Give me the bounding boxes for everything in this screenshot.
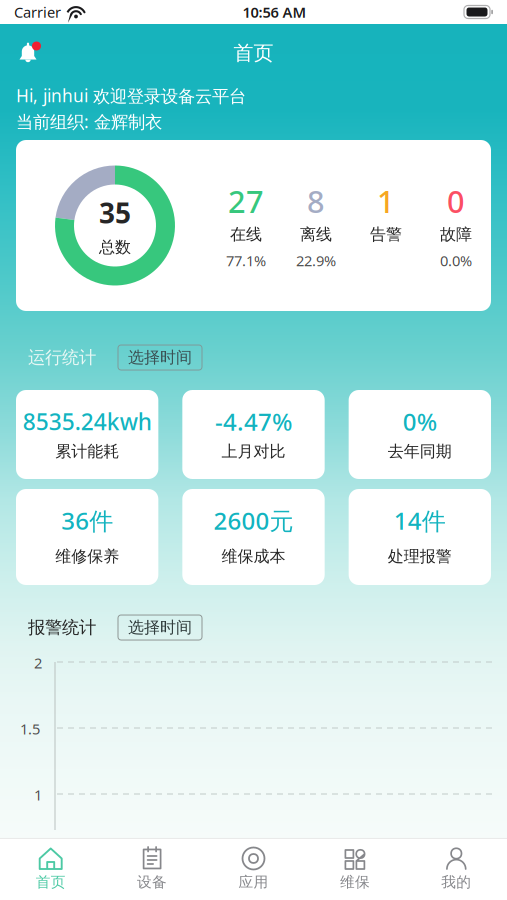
button[interactable]: 选择时间: [118, 345, 202, 370]
staticText: 0: [447, 181, 465, 221]
button[interactable]: 维保: [304, 838, 406, 900]
staticText: 在线: [230, 225, 262, 244]
staticText: 当前组织: 金辉制衣: [16, 110, 162, 133]
staticText: 维修保养: [55, 547, 119, 566]
staticText: 报警统计: [28, 617, 96, 638]
staticText: 上月对比: [221, 442, 285, 461]
staticText: 维保: [340, 873, 370, 891]
staticText: 36件: [61, 505, 113, 536]
button[interactable]: -4.47%: [182, 390, 325, 479]
staticText: 2600元: [213, 505, 293, 536]
button[interactable]: 应用: [203, 838, 304, 900]
staticText: -4.47%: [215, 406, 292, 437]
staticText: 总数: [99, 237, 131, 257]
staticText: 我的: [441, 873, 471, 891]
button[interactable]: 首页: [0, 838, 101, 900]
button[interactable]: 2600元: [182, 489, 325, 585]
staticText: 选择时间: [128, 618, 192, 637]
button[interactable]: 14件: [349, 489, 491, 585]
staticText: 维保成本: [221, 547, 285, 566]
staticText: 22.9%: [296, 251, 336, 270]
button[interactable]: 0%: [349, 390, 491, 479]
staticText: 0%: [403, 406, 437, 437]
staticText: 8: [307, 181, 325, 221]
staticText: 运行统计: [28, 347, 96, 368]
staticText: 35: [99, 194, 131, 231]
staticText: 14件: [394, 505, 446, 536]
staticText: 2: [34, 653, 42, 672]
staticText: 1.5: [20, 719, 40, 738]
staticText: 去年同期: [388, 442, 452, 461]
staticText: 应用: [238, 873, 268, 891]
button[interactable]: 我的: [406, 838, 507, 900]
button[interactable]: 设备: [101, 838, 203, 900]
staticText: 处理报警: [388, 547, 452, 566]
staticText: Carrier: [14, 2, 61, 22]
staticText: 8535.24kwh: [23, 406, 152, 436]
staticText: Hi, jinhui 欢迎登录设备云平台: [16, 84, 246, 107]
staticText: 设备: [137, 873, 167, 891]
staticText: 77.1%: [226, 251, 266, 270]
staticText: 10:56 AM: [242, 2, 306, 22]
button[interactable]: 选择时间: [118, 615, 202, 640]
staticText: 首页: [233, 41, 273, 65]
staticText: 告警: [370, 225, 402, 244]
staticText: 累计能耗: [55, 442, 119, 461]
staticText: 离线: [300, 225, 332, 244]
button[interactable]: 36件: [16, 489, 158, 585]
staticText: 首页: [36, 873, 66, 891]
staticText: 0.0%: [440, 251, 472, 270]
button[interactable]: 8535.24kwh: [16, 390, 158, 479]
button[interactable]: Notifications: [12, 37, 46, 68]
staticText: 1: [377, 181, 395, 221]
staticText: 故障: [440, 225, 472, 244]
staticText: 选择时间: [128, 348, 192, 367]
staticText: 1: [34, 785, 42, 804]
staticText: 27: [228, 181, 264, 221]
